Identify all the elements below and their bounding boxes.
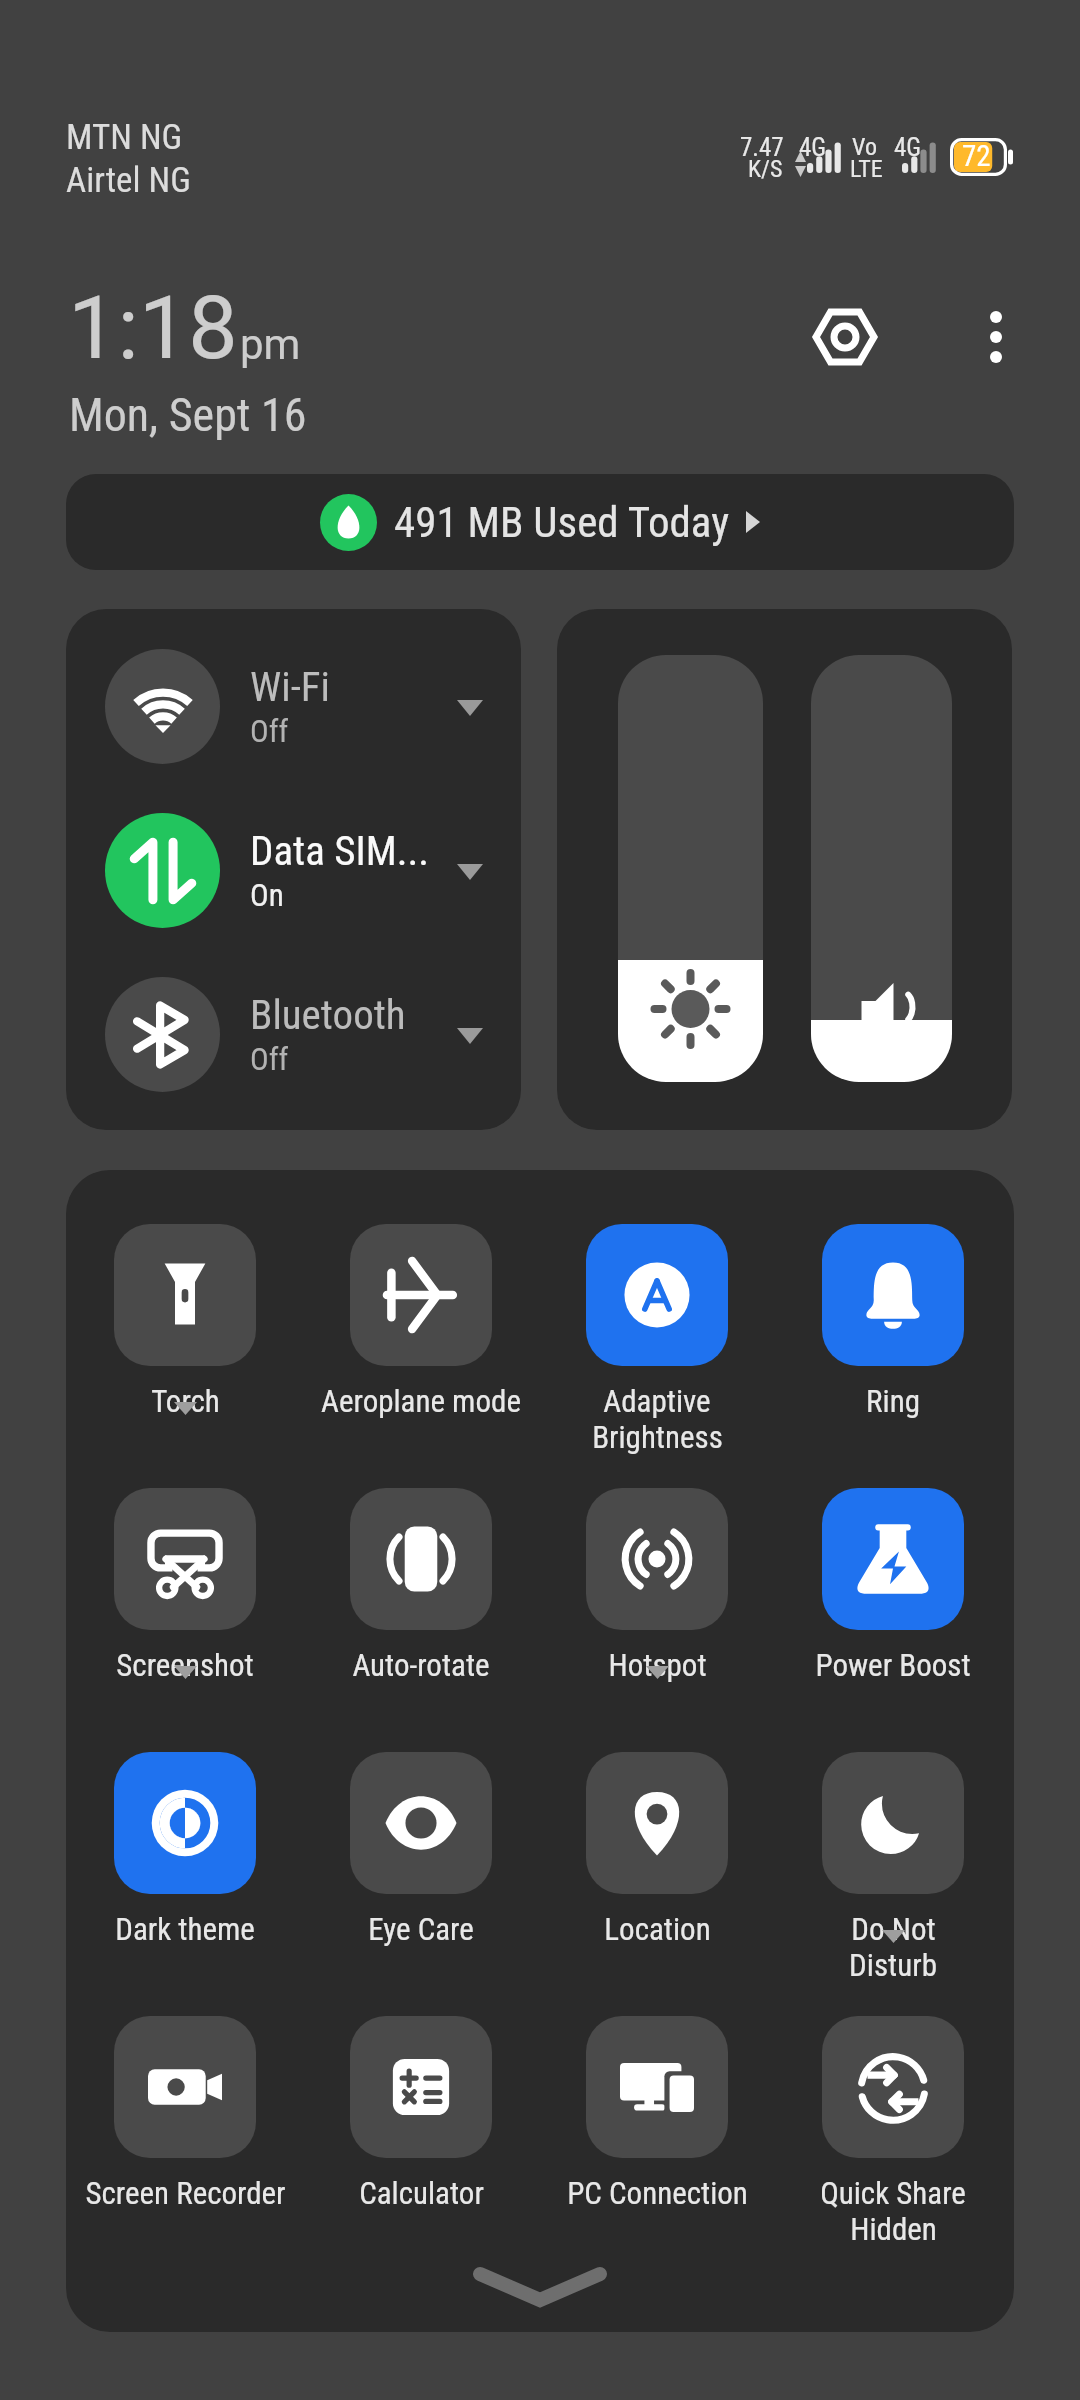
button[interactable]: Quick Share (822, 2016, 964, 2158)
button[interactable]: Wi-Fi (66, 630, 521, 782)
button[interactable]: Hotspot (586, 1488, 728, 1630)
staticText: Screenshot (116, 1647, 254, 1683)
staticText: 4G (799, 133, 827, 162)
button[interactable]: Calculator (350, 2016, 492, 2158)
staticText: LTE (850, 155, 883, 183)
staticText: Mon, Sept 16 (69, 388, 307, 442)
staticText: Hotspot (608, 1647, 707, 1683)
staticText: MTN NG Airtel NG (66, 117, 191, 201)
button[interactable]: Eye Care (350, 1752, 492, 1894)
staticText: Auto-rotate (352, 1647, 490, 1683)
staticText: Wi-Fi (250, 663, 330, 711)
button[interactable]: More options (952, 293, 1040, 381)
staticText: PC Connection (567, 2175, 748, 2211)
staticText: Off (250, 1041, 289, 1077)
button[interactable]: Aeroplane mode (350, 1224, 492, 1366)
button[interactable]: PC Connection (586, 2016, 728, 2158)
staticText: Dark theme (115, 1911, 255, 1947)
button[interactable]: Volume (811, 655, 952, 1082)
staticText: 1:18 (68, 276, 238, 379)
staticText: 4G (894, 133, 922, 162)
staticText: Ring (866, 1383, 920, 1419)
button[interactable]: Screen Recorder (114, 2016, 256, 2158)
staticText: Power Boost (815, 1647, 971, 1683)
staticText: Do Not (851, 1911, 936, 1947)
staticText: Off (250, 713, 289, 749)
button[interactable]: Ring (822, 1224, 964, 1366)
button[interactable]: Data SIM... (66, 794, 521, 946)
staticText: Bluetooth (250, 991, 406, 1039)
button[interactable]: Power Boost (822, 1488, 964, 1630)
button[interactable]: 1:18 (68, 276, 238, 379)
button[interactable]: Do Not (822, 1752, 964, 1894)
button[interactable]: Dark theme (114, 1752, 256, 1894)
button[interactable]: Auto-rotate (350, 1488, 492, 1630)
button[interactable]: Location (586, 1752, 728, 1894)
staticText: 7.47 (740, 133, 784, 162)
button[interactable]: Bluetooth (66, 958, 521, 1110)
staticText: Disturb (849, 1947, 937, 1983)
staticText: Calculator (359, 2175, 484, 2211)
button[interactable]: Torch (114, 1224, 256, 1366)
staticText: Location (604, 1911, 711, 1947)
button[interactable]: Screenshot (114, 1488, 256, 1630)
button[interactable]: Adaptive (586, 1224, 728, 1366)
button[interactable]: Brightness (618, 655, 763, 1082)
staticText: Brightness (592, 1419, 723, 1455)
staticText: 491 MB Used Today (394, 497, 730, 547)
staticText: Quick Share (820, 2175, 966, 2211)
button[interactable]: 491 MB Used Today (66, 474, 1014, 570)
staticText: pm (240, 320, 301, 369)
staticText: Data SIM... (250, 827, 430, 875)
staticText: Torch (151, 1383, 220, 1419)
staticText: Adaptive (603, 1383, 711, 1419)
staticText: 72 (962, 139, 991, 173)
staticText: Screen Recorder (85, 2175, 286, 2211)
button[interactable]: Settings (801, 293, 889, 381)
staticText: Eye Care (368, 1911, 474, 1947)
staticText: On (250, 877, 284, 913)
staticText: K/S (748, 155, 783, 183)
staticText: Aeroplane mode (321, 1383, 521, 1419)
staticText: Vo (852, 133, 877, 161)
staticText: Hidden (850, 2211, 937, 2247)
